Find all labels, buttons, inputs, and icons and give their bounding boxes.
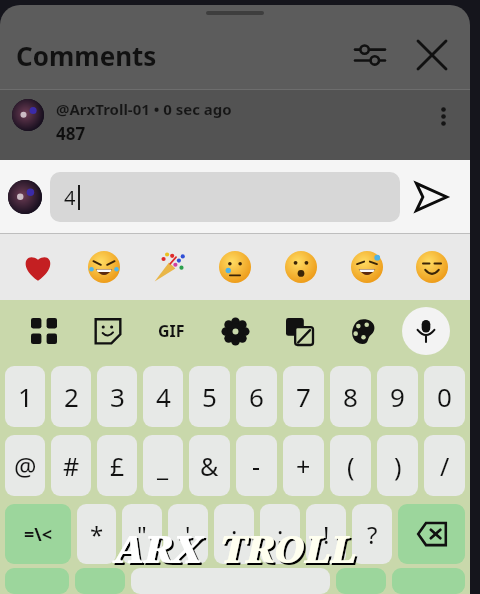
- staticText: TROLL: [222, 524, 359, 576]
- button[interactable]: Voice input: [402, 307, 450, 355]
- button[interactable]: Themes: [339, 307, 387, 355]
- staticText: *: [90, 518, 104, 551]
- button[interactable]: Keyboard settings: [211, 307, 259, 355]
- button[interactable]: Send comment: [400, 166, 462, 228]
- staticText: 7: [296, 379, 311, 414]
- staticText: !: [323, 518, 330, 551]
- staticText: 5: [202, 379, 217, 414]
- staticText: (: [347, 449, 355, 483]
- staticText: -: [252, 449, 261, 483]
- staticText: #: [63, 449, 80, 483]
- button[interactable]: -: [236, 435, 277, 496]
- button[interactable]: 4: [143, 366, 183, 427]
- staticText: GIF: [158, 320, 185, 342]
- staticText: :: [231, 518, 238, 551]
- button[interactable]: @: [5, 435, 45, 496]
- staticText: 2: [64, 379, 79, 414]
- button[interactable]: 8: [330, 366, 371, 427]
- staticText: 4: [156, 379, 171, 414]
- button[interactable]: Heart reaction: [10, 239, 66, 295]
- button[interactable]: Comma: [75, 568, 125, 594]
- button[interactable]: +: [283, 435, 324, 496]
- staticText: 487: [56, 122, 86, 145]
- staticText: 6: [249, 379, 264, 414]
- staticText: 1: [18, 379, 33, 414]
- button[interactable]: £: [97, 435, 137, 496]
- staticText: 0: [437, 379, 452, 414]
- button[interactable]: #: [51, 435, 91, 496]
- button[interactable]: Apps: [20, 307, 68, 355]
- button[interactable]: 2: [51, 366, 91, 427]
- button[interactable]: &: [189, 435, 230, 496]
- button[interactable]: Sort comments: [346, 31, 394, 79]
- button[interactable]: _: [143, 435, 183, 496]
- button[interactable]: 3: [97, 366, 137, 427]
- button[interactable]: 4: [50, 172, 400, 222]
- button[interactable]: Enter: [392, 568, 465, 594]
- staticText: ": [137, 518, 147, 551]
- button[interactable]: (: [330, 435, 371, 496]
- button[interactable]: /: [424, 435, 465, 496]
- button[interactable]: Party reaction: [141, 239, 197, 295]
- button[interactable]: *: [77, 504, 116, 564]
- button[interactable]: Symbols: [5, 504, 71, 564]
- button[interactable]: @ArxTroll-01 • 0 sec ago: [0, 90, 470, 160]
- button[interactable]: Sweat smile reaction: [339, 239, 395, 295]
- staticText: Comments: [16, 38, 157, 73]
- button[interactable]: Surprised reaction: [273, 239, 329, 295]
- button[interactable]: ?: [352, 504, 392, 564]
- staticText: _: [157, 449, 169, 483]
- staticText: 8: [343, 379, 358, 414]
- button[interactable]: 6: [236, 366, 277, 427]
- staticText: ': [185, 518, 191, 551]
- staticText: &: [200, 449, 219, 483]
- staticText: ;: [277, 518, 284, 551]
- button[interactable]: 1: [5, 366, 45, 427]
- staticText: /: [440, 449, 450, 483]
- button[interactable]: Close comments: [408, 31, 456, 79]
- button[interactable]: ): [377, 435, 418, 496]
- button[interactable]: Space: [131, 568, 330, 594]
- button[interactable]: ;: [260, 504, 300, 564]
- button[interactable]: Letters: [5, 568, 69, 594]
- button[interactable]: Sad reaction: [207, 239, 263, 295]
- button[interactable]: 0: [424, 366, 465, 427]
- button[interactable]: 5: [189, 366, 230, 427]
- button[interactable]: Period: [336, 568, 386, 594]
- button[interactable]: GIF keyboard: [147, 307, 195, 355]
- staticText: TROLL: [220, 522, 357, 574]
- button[interactable]: Laughing reaction: [76, 239, 132, 295]
- button[interactable]: More options: [426, 99, 460, 133]
- staticText: @ArxTroll-01 • 0 sec ago: [56, 99, 232, 119]
- button[interactable]: 9: [377, 366, 418, 427]
- staticText: ?: [367, 518, 378, 551]
- staticText: £: [110, 449, 125, 483]
- button[interactable]: Stickers: [84, 307, 132, 355]
- staticText: ARX: [114, 522, 202, 574]
- button[interactable]: Backspace: [398, 504, 465, 564]
- button[interactable]: ": [122, 504, 162, 564]
- button[interactable]: !: [306, 504, 346, 564]
- staticText: @: [14, 449, 37, 483]
- staticText: 3: [110, 379, 125, 414]
- button[interactable]: Translate: [275, 307, 323, 355]
- staticText: +: [296, 449, 311, 483]
- staticText: 4: [64, 184, 76, 211]
- button[interactable]: :: [214, 504, 254, 564]
- staticText: 9: [390, 379, 405, 414]
- button[interactable]: Smile reaction: [404, 239, 460, 295]
- button[interactable]: ': [168, 504, 208, 564]
- staticText: ARX: [116, 524, 204, 576]
- staticText: ): [394, 449, 402, 483]
- button[interactable]: 7: [283, 366, 324, 427]
- staticText: =\<: [24, 522, 53, 547]
